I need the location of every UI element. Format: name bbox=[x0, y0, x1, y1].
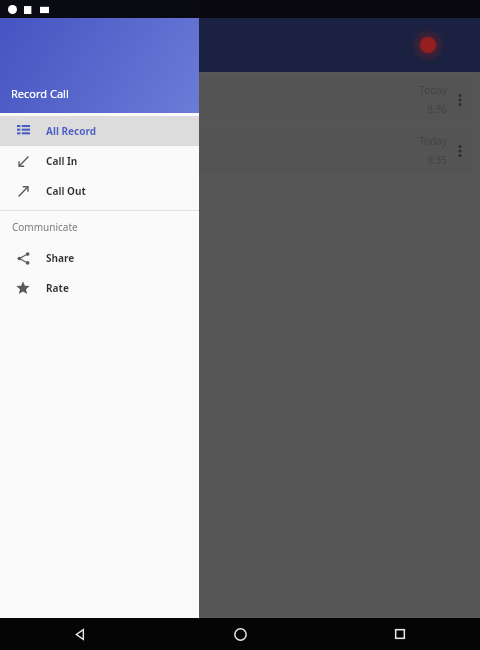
button[interactable]: More options bbox=[447, 76, 473, 123]
button[interactable]: Today bbox=[0, 76, 473, 123]
staticText: Today bbox=[419, 134, 447, 148]
staticText: Record Call bbox=[11, 86, 69, 101]
staticText: Share bbox=[46, 251, 75, 265]
button[interactable]: More options bbox=[447, 127, 473, 174]
staticText: All Record bbox=[46, 124, 97, 138]
staticText: Rate bbox=[46, 281, 69, 295]
button[interactable]: All Record bbox=[0, 116, 199, 146]
button[interactable]: Today bbox=[0, 127, 473, 174]
staticText: 8:36 bbox=[427, 102, 447, 116]
staticText: Call In bbox=[46, 154, 78, 168]
staticText: 8:35 bbox=[427, 153, 447, 167]
button[interactable]: Recent apps bbox=[320, 618, 480, 650]
button[interactable]: Share bbox=[0, 243, 199, 273]
button[interactable]: Call Out bbox=[0, 176, 199, 206]
button[interactable]: Home bbox=[160, 618, 320, 650]
button[interactable]: Record bbox=[408, 25, 448, 65]
staticText: Today bbox=[419, 83, 447, 97]
button[interactable]: Call In bbox=[0, 146, 199, 176]
staticText: Call Out bbox=[46, 184, 86, 198]
button[interactable]: Back bbox=[0, 618, 160, 650]
button[interactable]: Rate bbox=[0, 273, 199, 303]
staticText: Communicate bbox=[12, 220, 78, 234]
